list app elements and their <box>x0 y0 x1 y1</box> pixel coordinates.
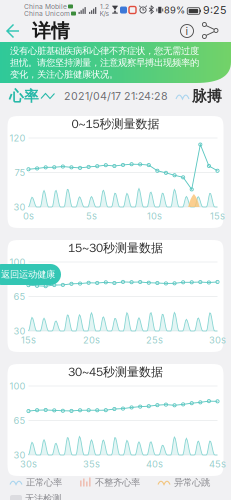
staticText: 2021/04/17 21:24:28 <box>64 89 168 102</box>
staticText: 30 <box>13 449 25 461</box>
staticText: 30~45秒测量数据 <box>68 364 163 379</box>
staticText: 10s <box>147 210 162 222</box>
staticText: 没有心脏基础疾病和心律不齐症状，您无需过度担忧。请您坚持测量，注意观察早搏出现频… <box>10 45 199 80</box>
staticText: 30 <box>13 201 25 213</box>
staticText: 75 <box>14 167 25 178</box>
staticText: 1.2 <box>100 2 109 10</box>
staticText: 心率 <box>9 87 39 105</box>
staticText: 30s <box>209 334 226 346</box>
staticText: K/s <box>99 9 109 18</box>
staticText: 100 <box>9 380 25 392</box>
button[interactable]: Back <box>0 20 30 42</box>
staticText: 详情 <box>32 19 70 43</box>
staticText: China Unicom <box>24 9 70 18</box>
staticText: 5s <box>86 210 97 222</box>
button[interactable]: 返回运动健康 <box>0 264 61 285</box>
staticText: 25s <box>146 334 163 346</box>
staticText: 30s <box>20 458 37 470</box>
staticText: 脉搏 <box>192 87 222 105</box>
staticText: 0~15秒测量数据 <box>71 116 159 131</box>
staticText: 100 <box>9 256 25 268</box>
staticText: 返回运动健康 <box>1 269 55 280</box>
staticText: 15~30秒测量数据 <box>68 240 163 255</box>
staticText: 9:25 <box>203 3 226 16</box>
staticText: 异常心跳 <box>174 477 210 488</box>
staticText: 65 <box>13 291 25 302</box>
staticText: 0s <box>23 210 34 222</box>
staticText: 15s <box>210 210 225 222</box>
button[interactable]: Share <box>200 20 224 42</box>
staticText: 无法检测 <box>25 493 61 500</box>
button[interactable]: Info <box>174 20 200 42</box>
staticText: 15s <box>21 334 36 346</box>
staticText: 120 <box>9 132 25 144</box>
staticText: 30 <box>13 325 25 337</box>
staticText: 不整齐心率 <box>95 477 140 488</box>
staticText: 20s <box>83 334 100 346</box>
staticText: 正常心率 <box>26 477 62 488</box>
staticText: 35s <box>83 458 100 470</box>
staticText: 45s <box>209 458 226 470</box>
staticText: 89% <box>164 4 185 16</box>
staticText: 40s <box>146 458 163 470</box>
staticText: 65 <box>13 415 25 426</box>
staticText: i <box>185 24 188 37</box>
staticText: China Mobile <box>24 2 67 10</box>
